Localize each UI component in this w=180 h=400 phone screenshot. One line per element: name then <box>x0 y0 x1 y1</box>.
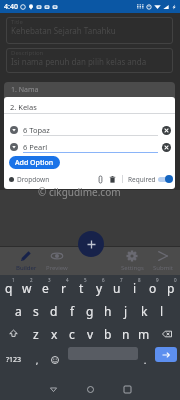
button[interactable]: b <box>99 322 117 345</box>
button[interactable]: d <box>45 299 63 322</box>
staticText: q <box>5 280 13 296</box>
button[interactable]: Add Option <box>9 156 60 169</box>
staticText: 4:40 <box>4 2 18 12</box>
button[interactable]: Preview <box>41 246 73 275</box>
button[interactable]: , <box>28 345 46 375</box>
button[interactable]: x <box>45 322 63 345</box>
button[interactable]: h <box>99 299 117 322</box>
button[interactable]: 2 <box>18 275 36 299</box>
button[interactable]: 0 <box>162 275 180 299</box>
button[interactable]: Remove option <box>162 143 171 152</box>
button[interactable]: 1. Nama <box>4 82 175 100</box>
button[interactable]: Remove option <box>162 126 171 135</box>
staticText: k <box>141 303 148 319</box>
button[interactable]: Backspace <box>153 322 180 345</box>
staticText: 1. Nama <box>11 85 39 95</box>
button[interactable]: c <box>63 322 81 345</box>
staticText: a <box>15 303 22 319</box>
staticText: g <box>86 303 94 319</box>
staticText: Kehebatan Sejarah Tanahku <box>11 25 116 36</box>
staticText: d <box>50 303 58 319</box>
staticText: 5 <box>84 277 87 283</box>
staticText: 9 <box>156 277 159 283</box>
button[interactable]: ?123 <box>0 345 28 375</box>
staticText: Title <box>11 18 23 26</box>
button[interactable] <box>157 174 173 184</box>
staticText: © cikgudime.com <box>38 185 121 199</box>
staticText: e <box>42 280 49 296</box>
staticText: t <box>79 280 84 296</box>
staticText: 2. Kelas <box>10 102 37 112</box>
button[interactable]: Enter <box>155 347 177 362</box>
staticText: 8 <box>138 277 141 283</box>
staticText: c <box>69 326 75 342</box>
staticText: 0 <box>174 277 177 283</box>
staticText: s <box>33 303 39 319</box>
staticText: 2 <box>30 277 33 283</box>
staticText: v <box>87 326 94 342</box>
button[interactable]: s <box>27 299 45 322</box>
button[interactable]: 8 <box>126 275 144 299</box>
staticText: i <box>133 280 137 296</box>
button[interactable]: Description <box>6 48 173 73</box>
button[interactable]: l <box>153 299 171 322</box>
staticText: Settings <box>121 264 144 272</box>
staticText: n <box>122 326 130 342</box>
button[interactable]: Shift <box>0 322 27 345</box>
button[interactable]: 3 <box>36 275 54 299</box>
button[interactable]: 1 <box>0 275 18 299</box>
staticText: x <box>51 326 58 342</box>
button[interactable]: 9 <box>144 275 162 299</box>
button[interactable]: f <box>63 299 81 322</box>
button[interactable]: Submit <box>147 246 179 275</box>
staticText: Required <box>128 175 156 184</box>
staticText: Dropdown <box>17 175 50 184</box>
staticText: l <box>160 303 164 319</box>
button[interactable]: Home <box>80 378 100 400</box>
staticText: . <box>144 355 147 366</box>
button[interactable]: Builder <box>10 246 42 275</box>
staticText: , <box>36 355 39 366</box>
button[interactable]: z <box>27 322 45 345</box>
button[interactable]: Emoji <box>46 345 64 375</box>
button[interactable]: Dropdown <box>9 175 50 184</box>
button[interactable]: 6 <box>90 275 108 299</box>
button[interactable]: Recents <box>117 378 137 400</box>
button[interactable]: 7 <box>108 275 126 299</box>
button[interactable]: Attach <box>95 171 106 187</box>
button[interactable]: . <box>138 345 152 375</box>
button[interactable]: n <box>117 322 135 345</box>
staticText: Description <box>11 49 44 57</box>
staticText: 1 <box>12 277 15 283</box>
button[interactable]: g <box>81 299 99 322</box>
staticText: z <box>33 326 39 342</box>
button[interactable]: Settings <box>116 246 148 275</box>
staticText: Preview <box>46 264 68 272</box>
button[interactable]: Add question <box>78 231 104 257</box>
staticText: Isi nama penuh dan pilih kelas anda <box>11 56 147 67</box>
staticText: Submit <box>153 264 174 272</box>
button[interactable]: Title <box>6 17 173 44</box>
staticText: m <box>138 326 150 342</box>
staticText: b <box>104 326 112 342</box>
button[interactable]: a <box>9 299 27 322</box>
staticText: f <box>70 303 75 319</box>
button[interactable]: k <box>135 299 153 322</box>
button[interactable]: m <box>135 322 153 345</box>
staticText: 7 <box>120 277 123 283</box>
button[interactable]: Delete <box>107 171 118 187</box>
staticText: y <box>96 280 103 296</box>
staticText: o <box>149 280 157 296</box>
staticText: 6 Pearl <box>23 142 48 152</box>
button[interactable]: j <box>117 299 135 322</box>
staticText: 3 <box>48 277 51 283</box>
staticText: ?123 <box>6 355 22 365</box>
button[interactable]: v <box>81 322 99 345</box>
button[interactable]: 4 <box>54 275 72 299</box>
staticText: 6 Topaz <box>23 125 50 135</box>
staticText: u <box>113 280 121 296</box>
button[interactable]: Back <box>43 378 63 400</box>
staticText: j <box>124 303 128 319</box>
button[interactable]: 5 <box>72 275 90 299</box>
